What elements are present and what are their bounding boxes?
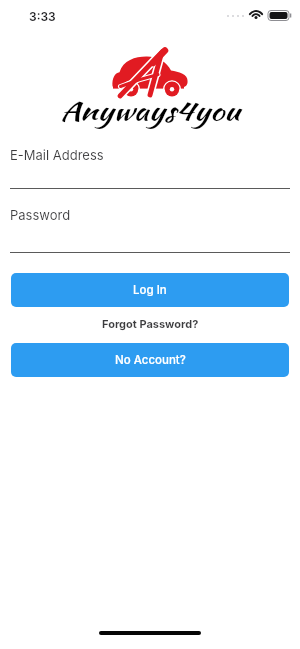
staticText: No Account? [115,353,186,367]
staticText: 3:33 [29,9,56,24]
button[interactable]: Forgot Password? [0,317,300,330]
staticText: Log In [133,283,167,297]
button[interactable] [10,205,290,254]
staticText: Forgot Password? [102,317,199,330]
staticText: E-Mail Address [10,147,104,163]
staticText: Password [10,207,71,223]
staticText: Anyways4you [0,92,300,130]
button[interactable] [10,145,290,190]
button[interactable]: Log In [11,273,289,307]
button[interactable]: No Account? [11,343,289,377]
